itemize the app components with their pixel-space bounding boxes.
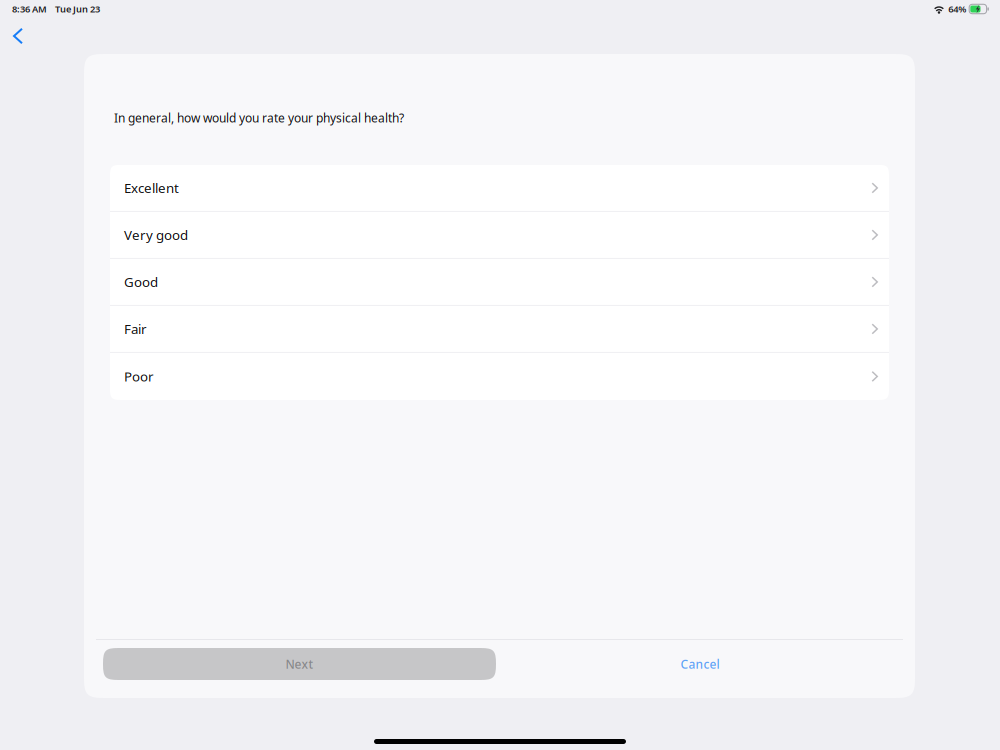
staticText: Poor <box>124 368 154 385</box>
staticText: 8:36 AM <box>12 3 47 15</box>
button[interactable]: Cancel <box>620 648 780 680</box>
button[interactable]: Excellent <box>110 165 889 212</box>
staticText: Very good <box>124 226 188 244</box>
staticText: Good <box>124 273 158 291</box>
button[interactable]: Poor <box>110 353 889 400</box>
button[interactable]: Fair <box>110 306 889 353</box>
staticText: Tue Jun 23 <box>55 3 100 15</box>
button[interactable]: Good <box>110 259 889 306</box>
staticText: Next <box>285 656 313 672</box>
staticText: 64% <box>948 3 966 15</box>
button[interactable]: Very good <box>110 212 889 259</box>
staticText: Excellent <box>124 179 179 197</box>
staticText: In general, how would you rate your phys… <box>114 110 404 126</box>
staticText: Fair <box>124 320 147 338</box>
button[interactable]: Next <box>103 648 496 680</box>
button[interactable]: Back <box>2 22 34 50</box>
staticText: Cancel <box>680 656 719 672</box>
